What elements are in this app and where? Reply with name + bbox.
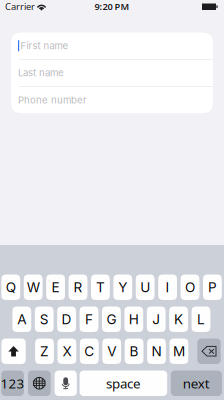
button[interactable]: S (35, 306, 54, 332)
staticText: X (62, 343, 71, 359)
staticText: L (197, 311, 205, 327)
button[interactable]: H (124, 306, 143, 332)
button[interactable]: P (203, 274, 222, 300)
button[interactable]: Y (113, 274, 132, 300)
button[interactable]: W (24, 274, 43, 300)
staticText: next (183, 374, 210, 392)
button[interactable]: R (69, 274, 87, 300)
staticText: Q (6, 279, 16, 295)
staticText: M (173, 343, 185, 359)
staticText: First name (20, 40, 68, 51)
button[interactable]: Delete (197, 338, 221, 364)
staticText: P (208, 279, 217, 295)
button[interactable]: Q (1, 274, 20, 300)
staticText: F (85, 311, 93, 327)
staticText: 123 (1, 374, 25, 392)
button[interactable]: A (12, 306, 31, 332)
button[interactable]: K (169, 306, 188, 332)
staticText: V (107, 343, 116, 359)
staticText: Y (118, 279, 127, 295)
button[interactable]: Space (80, 370, 167, 396)
staticText: O (185, 279, 195, 295)
staticText: Z (40, 343, 49, 359)
button[interactable]: First name (11, 32, 213, 59)
button[interactable]: Last name (11, 60, 213, 86)
staticText: I (166, 279, 170, 295)
staticText: B (130, 343, 139, 359)
button[interactable]: Numbers (1, 370, 24, 396)
button[interactable]: Next keyboard (28, 370, 51, 396)
button[interactable]: O (181, 274, 199, 300)
staticText: U (140, 279, 150, 295)
staticText: G (106, 311, 116, 327)
button[interactable]: Dictation (55, 370, 77, 396)
button[interactable]: L (192, 306, 210, 332)
button[interactable]: F (80, 306, 98, 332)
button[interactable]: Phone number (11, 87, 213, 113)
button[interactable]: I (158, 274, 177, 300)
staticText: space (106, 374, 141, 392)
button[interactable]: B (125, 338, 143, 364)
staticText: C (84, 343, 94, 359)
staticText: H (129, 311, 139, 327)
button[interactable]: G (102, 306, 121, 332)
staticText: S (40, 311, 49, 327)
button[interactable]: T (91, 274, 110, 300)
staticText: W (27, 279, 40, 295)
button[interactable]: U (136, 274, 155, 300)
staticText: R (73, 279, 82, 295)
button[interactable]: J (147, 306, 166, 332)
button[interactable]: N (147, 338, 166, 364)
button[interactable]: C (80, 338, 99, 364)
button[interactable]: D (57, 306, 76, 332)
button[interactable]: M (169, 338, 188, 364)
button[interactable]: Shift (1, 338, 26, 364)
staticText: Carrier (5, 0, 35, 13)
staticText: 9:20 PM (94, 0, 129, 13)
staticText: K (174, 311, 183, 327)
button[interactable]: V (102, 338, 121, 364)
staticText: N (151, 343, 161, 359)
button[interactable]: X (57, 338, 76, 364)
staticText: A (17, 311, 26, 327)
staticText: D (62, 311, 72, 327)
button[interactable]: E (46, 274, 65, 300)
staticText: Phone number (18, 94, 87, 106)
staticText: J (152, 311, 160, 327)
button[interactable]: Next (171, 370, 222, 396)
staticText: T (96, 279, 105, 295)
staticText: E (52, 279, 60, 295)
button[interactable]: Z (35, 338, 54, 364)
staticText: Last name (18, 67, 64, 79)
